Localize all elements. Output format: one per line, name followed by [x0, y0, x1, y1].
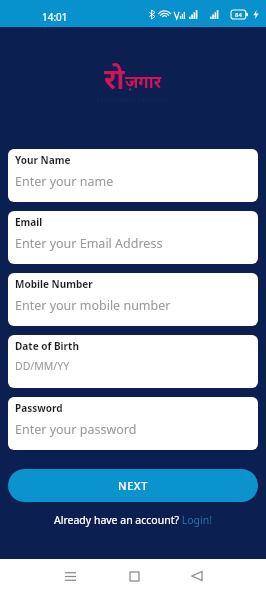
button[interactable]: Already have an account? Login! — [54, 513, 213, 527]
staticText: Enter your name — [15, 173, 114, 190]
staticText: Password — [15, 401, 63, 415]
staticText: Date of Birth — [15, 339, 79, 353]
button[interactable]: NEXT — [8, 469, 258, 502]
staticText: 14:01 — [42, 10, 68, 24]
button[interactable]: Date of Birth — [8, 335, 258, 388]
staticText: DD/MM/YY — [15, 359, 70, 373]
button[interactable]: Your Name — [8, 149, 258, 202]
staticText: Enter your password — [15, 421, 137, 438]
staticText: NEXT — [118, 478, 148, 493]
staticText: Email — [15, 215, 43, 229]
staticText: रो — [104, 59, 125, 97]
staticText: Your Name — [15, 153, 71, 167]
staticText: ज़गार — [125, 70, 162, 93]
staticText: Already have an account? Login! — [54, 513, 213, 527]
button[interactable]: Email — [8, 211, 258, 264]
button[interactable]: Recent apps — [55, 561, 85, 591]
staticText: 84 — [235, 11, 242, 19]
staticText: Mobile Number — [15, 277, 93, 291]
staticText: Enter your mobile number — [15, 297, 171, 314]
button[interactable]: Back — [182, 561, 212, 591]
button[interactable]: Password — [8, 397, 258, 450]
button[interactable]: Mobile Number — [8, 273, 258, 326]
button[interactable]: Home — [119, 561, 149, 591]
staticText: Enter your Email Address — [15, 235, 163, 252]
